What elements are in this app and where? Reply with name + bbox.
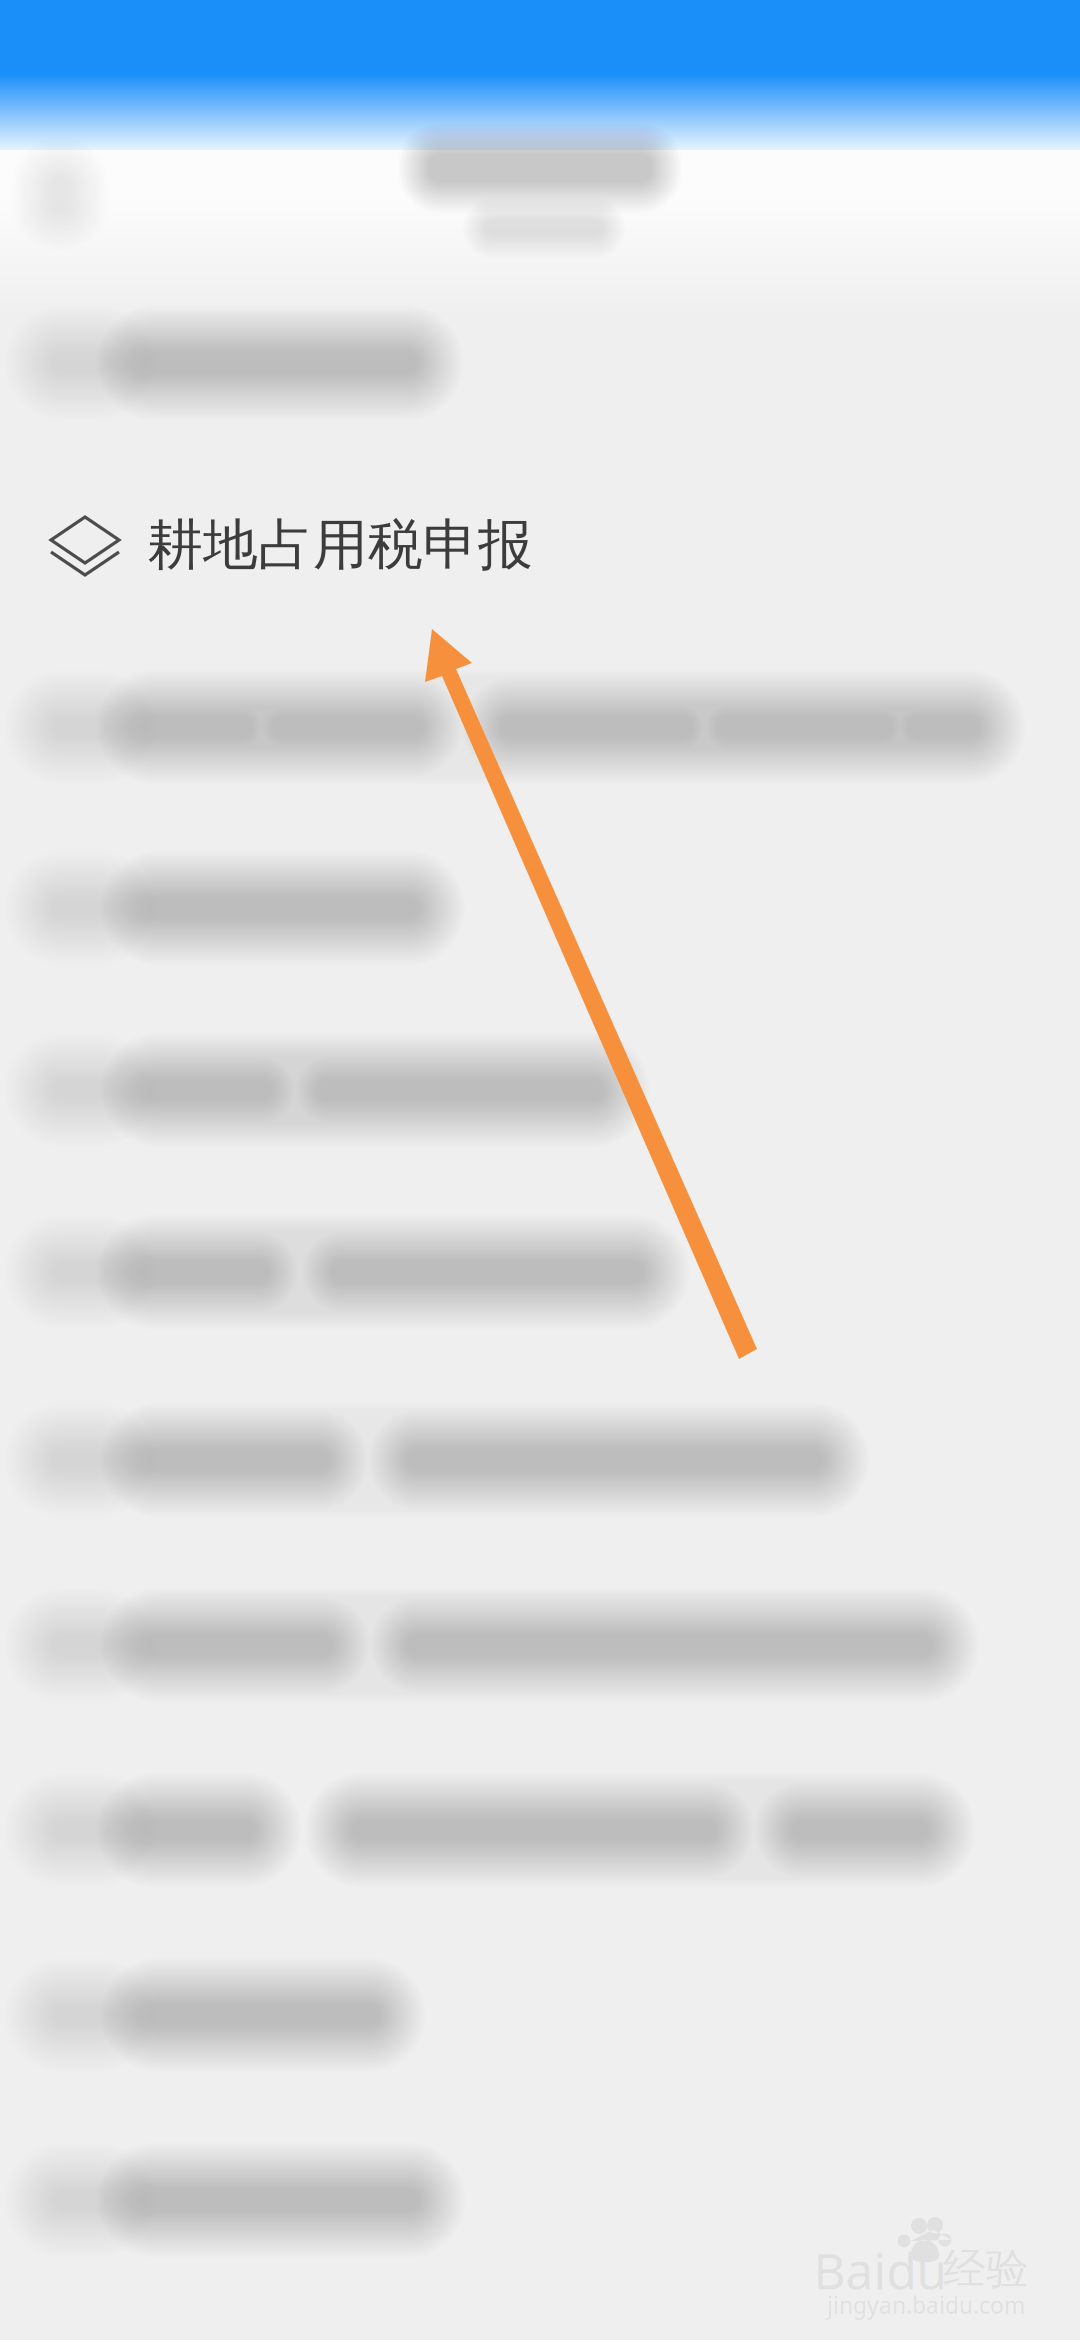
button[interactable]: Annotation arrow pointing at the 耕地占用税申报… bbox=[0, 0, 1080, 2340]
staticText: jingyan.baidu.com bbox=[827, 2290, 1025, 2320]
staticText: 经验 bbox=[943, 2243, 1029, 2295]
button[interactable]: 耕地占用税申报 bbox=[48, 470, 1048, 620]
staticText: Baidu bbox=[813, 2237, 946, 2303]
staticText: 耕地占用税申报 bbox=[148, 511, 533, 578]
